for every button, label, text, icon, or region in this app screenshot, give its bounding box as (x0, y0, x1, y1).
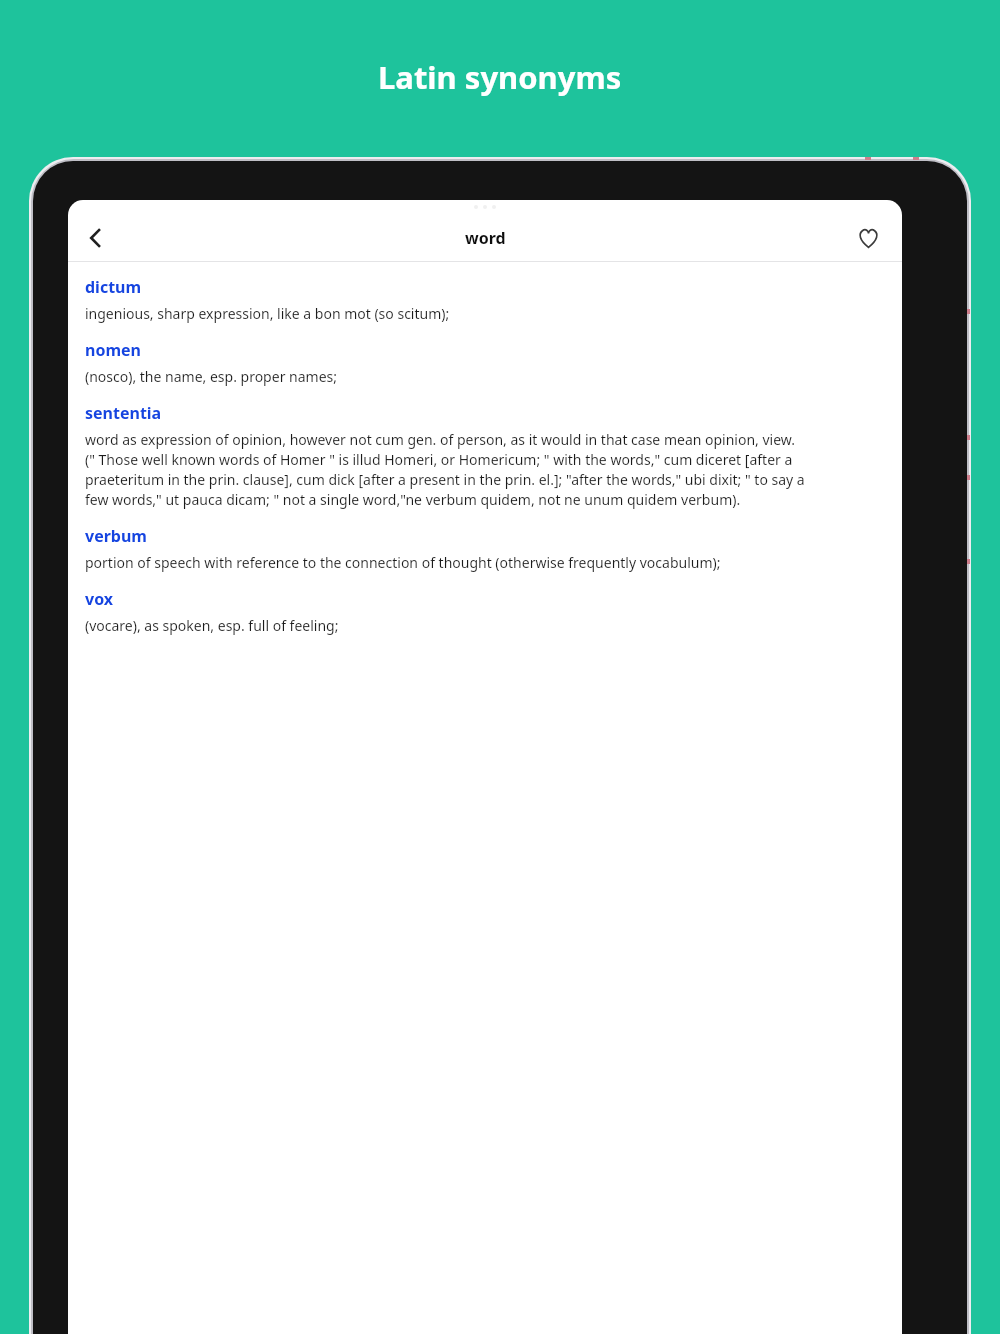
staticText: praeteritum in the prin. clause], cum di… (85, 470, 805, 489)
button[interactable]: Favorite (848, 218, 888, 258)
staticText: Latin synonyms (378, 56, 622, 98)
button[interactable]: verbum (85, 523, 890, 586)
staticText: vox (85, 588, 114, 610)
staticText: nomen (85, 339, 141, 361)
staticText: word (465, 227, 506, 249)
button[interactable]: sententia (85, 400, 890, 523)
staticText: (vocare), as spoken, esp. full of feelin… (85, 616, 339, 635)
button[interactable]: vox (85, 586, 890, 649)
staticText: verbum (85, 525, 147, 547)
button[interactable]: Back (76, 218, 116, 258)
staticText: few words," ut pauca dicam; " not a sing… (85, 490, 741, 509)
staticText: word as expression of opinion, however n… (85, 430, 796, 449)
staticText: sententia (85, 402, 162, 424)
button[interactable]: dictum (85, 274, 890, 337)
staticText: (nosco), the name, esp. proper names; (85, 367, 337, 386)
button[interactable]: nomen (85, 337, 890, 400)
staticText: dictum (85, 276, 142, 298)
staticText: portion of speech with reference to the … (85, 553, 721, 572)
staticText: (" Those well known words of Homer " is … (85, 450, 793, 469)
staticText: ingenious, sharp expression, like a bon … (85, 304, 450, 323)
